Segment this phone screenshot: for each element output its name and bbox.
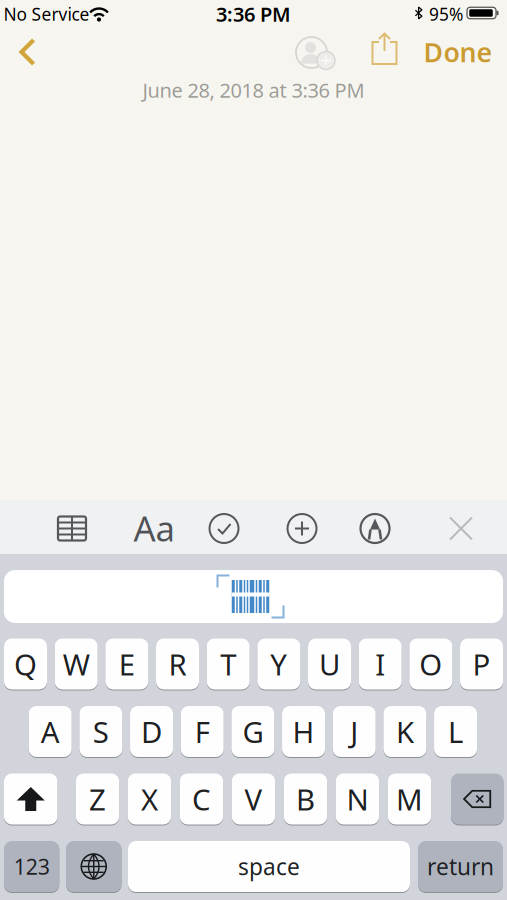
- button[interactable]: Checklist: [209, 513, 239, 543]
- button[interactable]: G: [231, 705, 274, 758]
- button[interactable]: space: [128, 840, 410, 893]
- button[interactable]: Text styles: [133, 505, 174, 551]
- button[interactable]: Q: [4, 637, 47, 690]
- button[interactable]: T: [207, 637, 250, 690]
- button[interactable]: Share: [369, 32, 399, 68]
- button[interactable]: E: [105, 637, 148, 690]
- button[interactable]: Insert table: [55, 513, 89, 543]
- staticText: 123: [14, 852, 50, 881]
- button[interactable]: L: [434, 705, 477, 758]
- staticText: I: [375, 644, 385, 683]
- staticText: E: [119, 644, 135, 683]
- button[interactable]: F: [181, 705, 224, 758]
- button[interactable]: H: [282, 705, 325, 758]
- staticText: M: [396, 779, 423, 818]
- button[interactable]: W: [55, 637, 98, 690]
- button[interactable]: S: [79, 705, 122, 758]
- staticText: K: [396, 712, 414, 751]
- staticText: F: [195, 712, 210, 751]
- staticText: L: [448, 712, 463, 751]
- button[interactable]: J: [333, 705, 376, 758]
- button[interactable]: R: [156, 637, 199, 690]
- button[interactable]: Close: [448, 515, 474, 541]
- button[interactable]: M: [388, 772, 431, 825]
- staticText: A: [41, 712, 60, 751]
- staticText: G: [242, 712, 263, 751]
- staticText: B: [296, 779, 315, 818]
- button[interactable]: Shift: [4, 772, 57, 825]
- staticText: 3:36 PM: [216, 1, 291, 27]
- staticText: R: [168, 644, 186, 683]
- staticText: W: [63, 644, 90, 683]
- staticText: V: [244, 779, 262, 818]
- staticText: X: [141, 779, 158, 818]
- button[interactable]: Y: [257, 637, 300, 690]
- button[interactable]: V: [232, 772, 275, 825]
- button[interactable]: D: [130, 705, 173, 758]
- staticText: J: [350, 712, 358, 751]
- staticText: H: [293, 712, 315, 751]
- staticText: Y: [270, 644, 287, 683]
- button[interactable]: N: [336, 772, 379, 825]
- button[interactable]: Delete: [451, 772, 503, 825]
- staticText: return: [427, 851, 494, 881]
- staticText: 95%: [429, 2, 463, 25]
- button[interactable]: 123: [4, 840, 59, 893]
- staticText: D: [141, 712, 162, 751]
- button[interactable]: X: [128, 772, 171, 825]
- staticText: P: [472, 644, 490, 683]
- staticText: No Service: [3, 2, 89, 25]
- button[interactable]: Z: [76, 772, 119, 825]
- button[interactable]: O: [409, 637, 452, 690]
- button[interactable]: Next keyboard: [66, 840, 121, 893]
- button[interactable]: B: [284, 772, 327, 825]
- staticText: C: [192, 779, 211, 818]
- button[interactable]: I: [359, 637, 402, 690]
- button[interactable]: Back: [13, 34, 41, 69]
- button[interactable]: return: [418, 840, 503, 893]
- button[interactable]: C: [180, 772, 223, 825]
- staticText: N: [346, 779, 368, 818]
- staticText: U: [319, 644, 340, 683]
- button[interactable]: Add attachment: [287, 513, 317, 543]
- button[interactable]: Markup: [359, 512, 391, 544]
- button[interactable]: P: [460, 637, 503, 690]
- button[interactable]: Scan barcode: [4, 570, 503, 623]
- button[interactable]: U: [308, 637, 351, 690]
- staticText: O: [419, 644, 442, 683]
- staticText: Q: [14, 644, 37, 683]
- button[interactable]: Done: [423, 34, 492, 70]
- staticText: S: [93, 712, 109, 751]
- staticText: June 28, 2018 at 3:36 PM: [142, 77, 364, 103]
- staticText: space: [238, 851, 300, 881]
- button[interactable]: Add people: [295, 34, 339, 70]
- staticText: Aa: [133, 505, 174, 551]
- button[interactable]: A: [29, 705, 72, 758]
- staticText: Z: [89, 779, 106, 818]
- button[interactable]: K: [383, 705, 426, 758]
- staticText: Done: [423, 34, 492, 70]
- staticText: T: [220, 644, 236, 683]
